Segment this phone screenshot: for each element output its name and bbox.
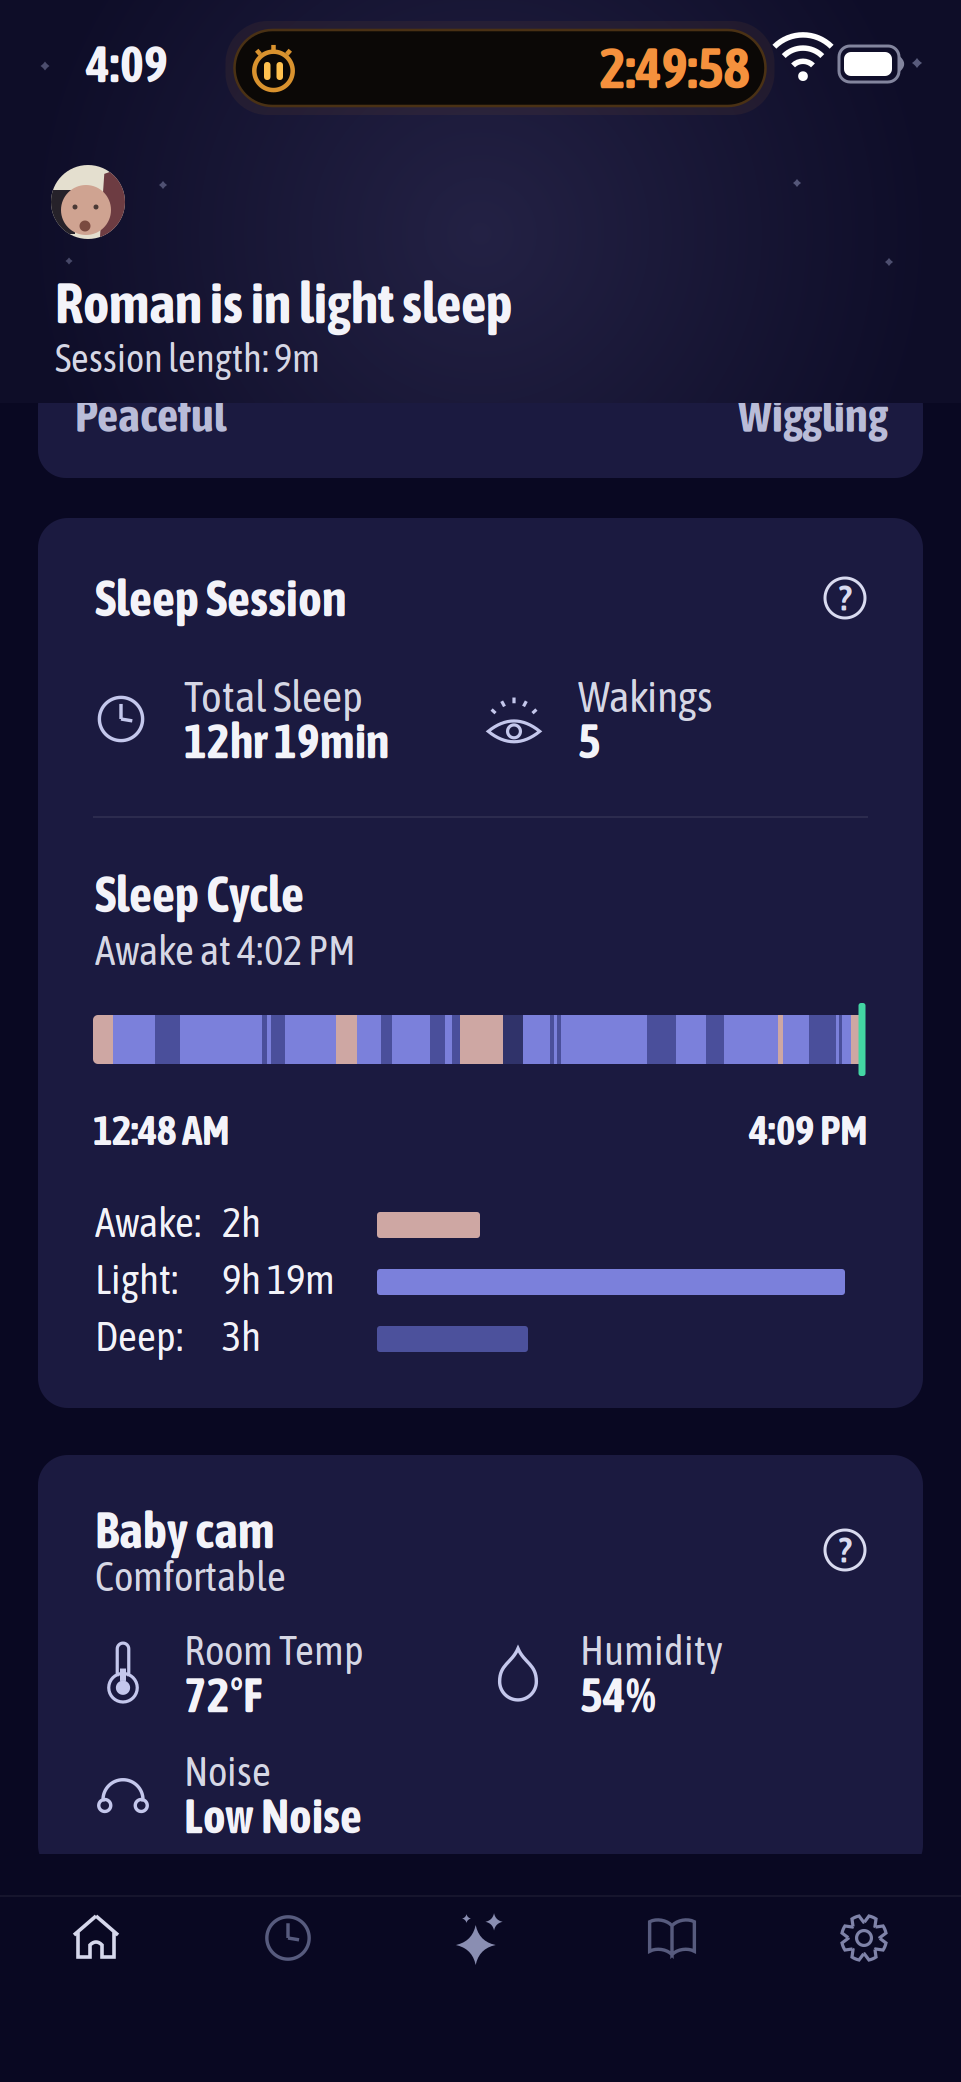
button[interactable] <box>57 1899 135 1977</box>
staticText: Deep: <box>95 1313 183 1359</box>
staticText: 54% <box>580 1668 656 1722</box>
button[interactable] <box>441 1899 519 1977</box>
button[interactable] <box>632 1902 712 1974</box>
staticText: Wakings <box>578 671 713 721</box>
button[interactable] <box>51 165 125 239</box>
staticText: Comfortable <box>95 1553 286 1599</box>
staticText: ? <box>839 579 851 617</box>
staticText: 12hr 19min <box>184 714 389 768</box>
staticText: 12:48 AM <box>93 1107 230 1153</box>
staticText: 9h 19m <box>222 1256 335 1302</box>
button[interactable]: ? <box>825 578 865 618</box>
staticText: 5 <box>578 714 601 768</box>
staticText: Noise <box>184 1748 271 1794</box>
staticText: Humidity <box>580 1627 723 1673</box>
staticText: Room Temp <box>184 1627 364 1673</box>
button[interactable]: 2:49:58 <box>234 30 765 106</box>
staticText: ? <box>839 1531 851 1569</box>
staticText: 2:49:58 <box>599 37 749 99</box>
staticText: Awake: <box>95 1199 201 1245</box>
button[interactable]: ? <box>825 1530 865 1570</box>
button[interactable] <box>251 1901 325 1975</box>
staticText: 2h <box>222 1199 261 1245</box>
staticText: Low Noise <box>184 1789 362 1843</box>
staticText: Light: <box>95 1256 178 1302</box>
staticText: 4:09 PM <box>749 1107 868 1153</box>
staticText: 72°F <box>184 1668 262 1722</box>
staticText: Total Sleep <box>184 671 363 721</box>
staticText: Sleep Cycle <box>95 866 304 922</box>
staticText: Peaceful <box>75 389 226 441</box>
staticText: Baby cam <box>95 1502 274 1558</box>
staticText: Sleep Session <box>95 570 347 626</box>
staticText: Wiggling <box>738 389 888 441</box>
staticText: 3h <box>222 1313 261 1359</box>
staticText: Awake at 4:02 PM <box>95 927 356 973</box>
staticText: Session length: 9m <box>55 336 320 380</box>
button[interactable] <box>826 1900 902 1976</box>
staticText: 4:09 <box>86 36 168 92</box>
staticText: Roman is in light sleep <box>55 272 513 334</box>
